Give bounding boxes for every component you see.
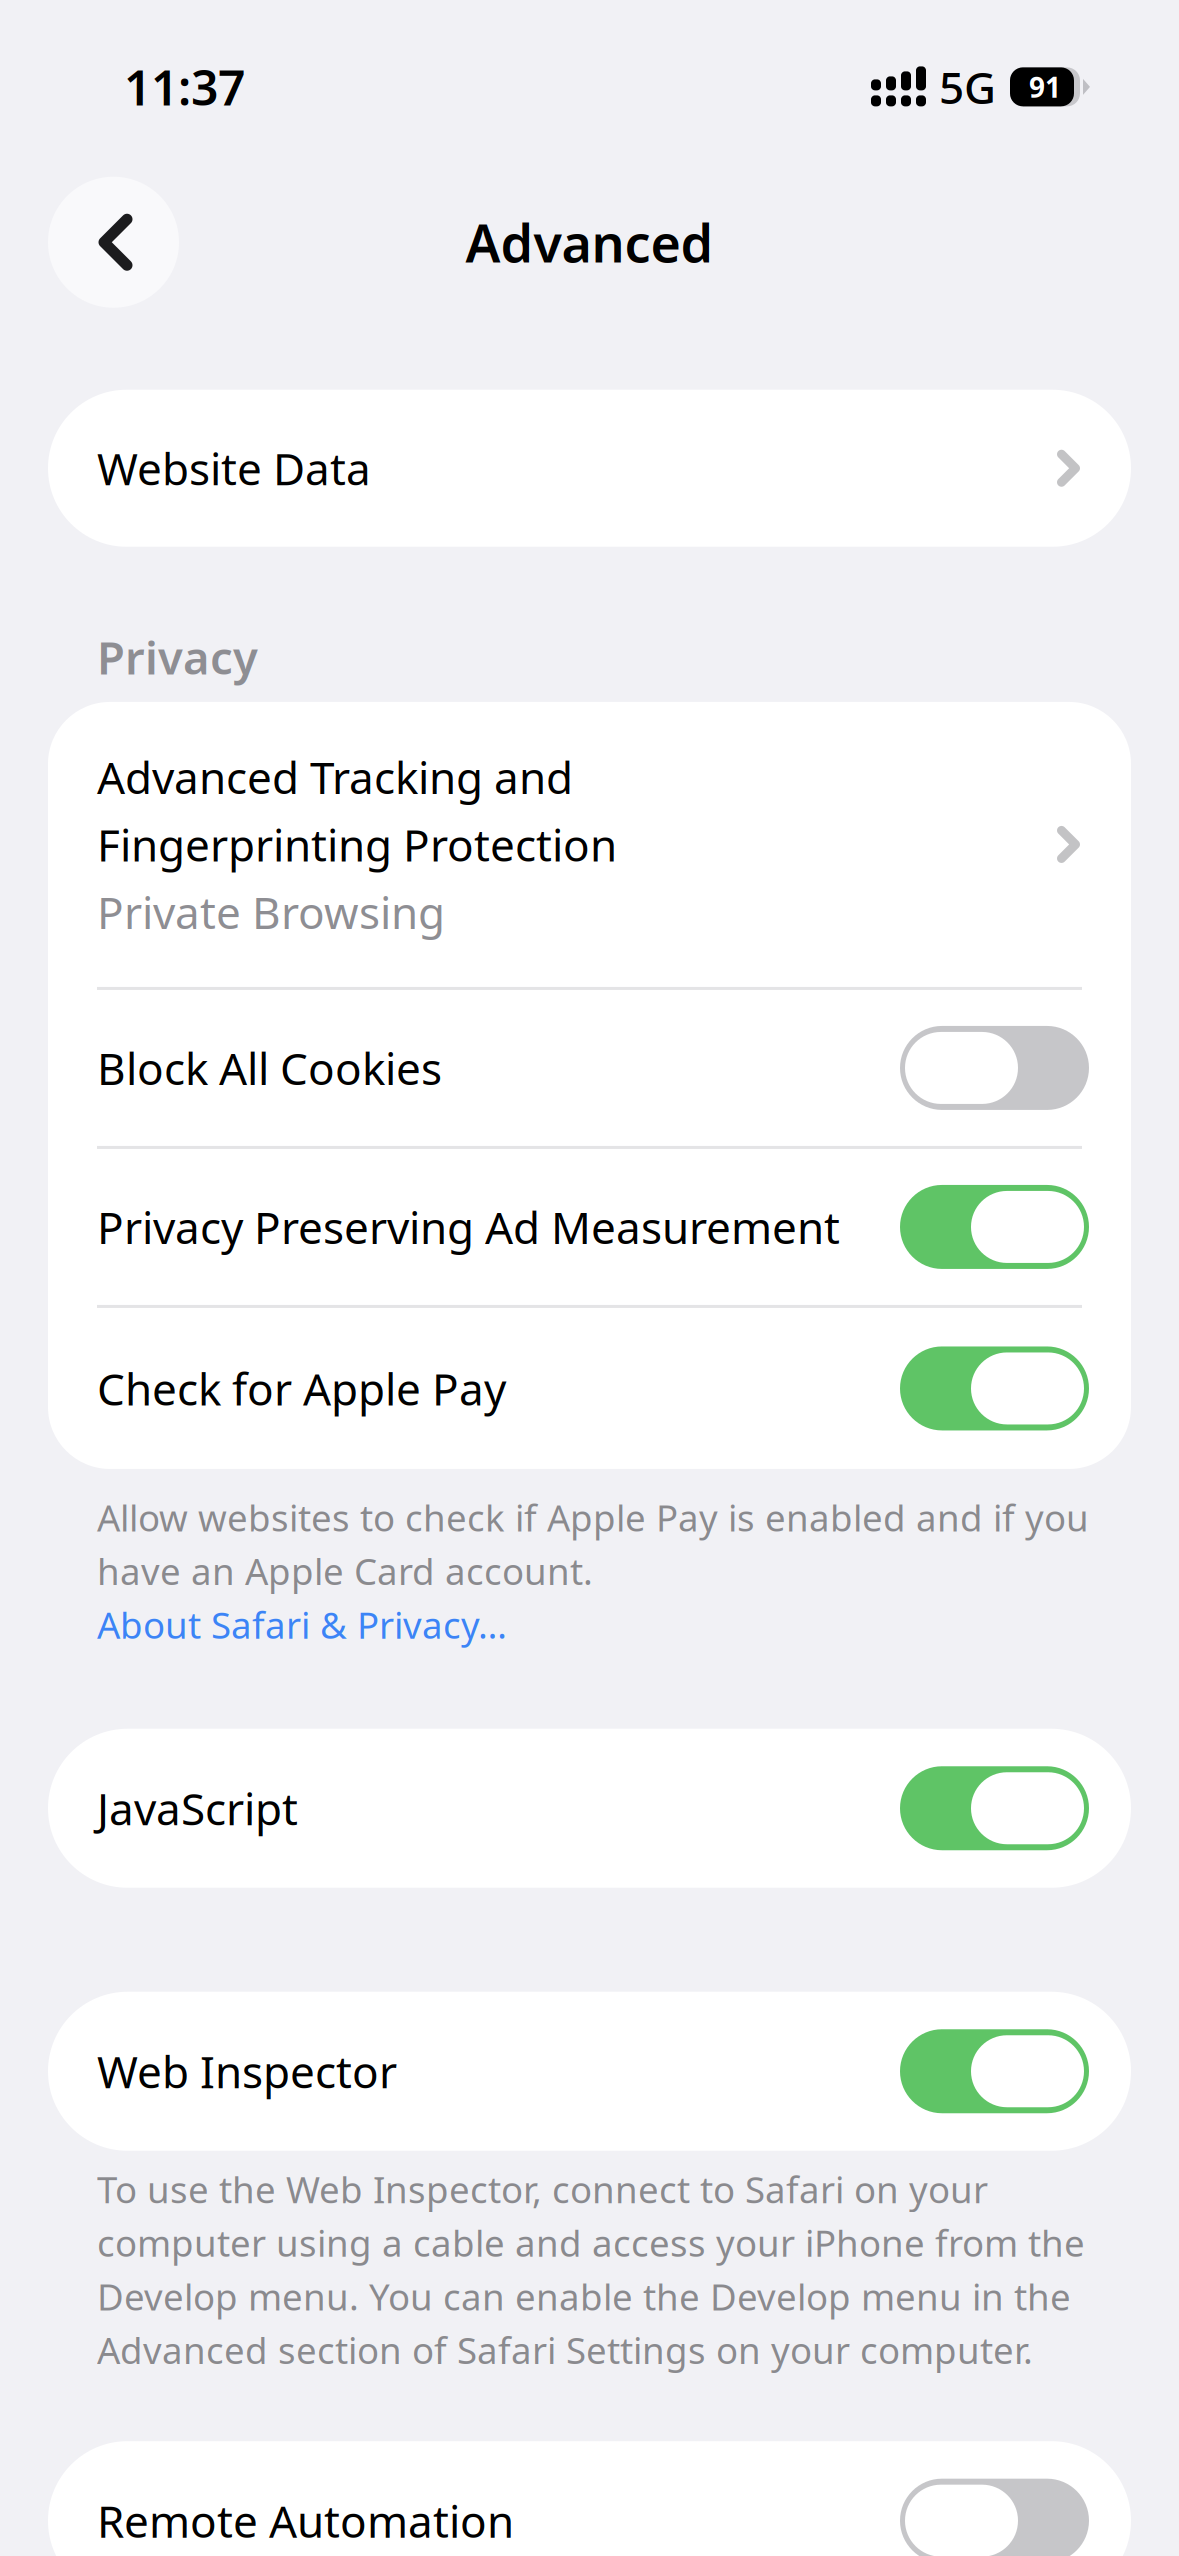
staticText: To use the Web Inspector, connect to Saf… xyxy=(97,2165,1085,2374)
staticText: Web Inspector xyxy=(97,2042,397,2100)
button[interactable]: Privacy Preserving Ad Measurement xyxy=(48,1149,1131,1305)
staticText: JavaScript xyxy=(97,1779,298,1837)
staticText: Advanced xyxy=(465,208,713,277)
button[interactable]: About Safari & Privacy… xyxy=(97,1600,507,1649)
staticText: 11:37 xyxy=(124,55,245,119)
button[interactable]: Advanced Tracking and xyxy=(48,702,1131,987)
button[interactable]: Web Inspector xyxy=(48,1992,1131,2151)
staticText: Website Data xyxy=(97,439,371,497)
staticText: Check for Apple Pay xyxy=(97,1359,506,1418)
staticText: 5G xyxy=(939,58,996,116)
staticText: Block All Cookies xyxy=(97,1039,442,1097)
button[interactable]: Block All Cookies xyxy=(48,990,1131,1146)
staticText: About Safari & Privacy… xyxy=(97,1600,507,1649)
button[interactable]: Website Data xyxy=(48,390,1131,547)
staticText: Fingerprinting Protection xyxy=(97,815,617,874)
staticText: Privacy Preserving Ad Measurement xyxy=(97,1198,840,1256)
staticText: Privacy xyxy=(97,627,258,687)
button[interactable]: Remote Automation xyxy=(48,2441,1131,2556)
button[interactable]: Check for Apple Pay xyxy=(48,1308,1131,1469)
button[interactable]: Back xyxy=(48,177,179,308)
staticText: 91 xyxy=(1029,68,1061,105)
staticText: Remote Automation xyxy=(97,2491,514,2550)
staticText: Private Browsing xyxy=(97,883,445,941)
staticText: Allow websites to check if Apple Pay is … xyxy=(97,1493,1089,1595)
button[interactable]: JavaScript xyxy=(48,1729,1131,1888)
staticText: Advanced Tracking and xyxy=(97,748,573,806)
